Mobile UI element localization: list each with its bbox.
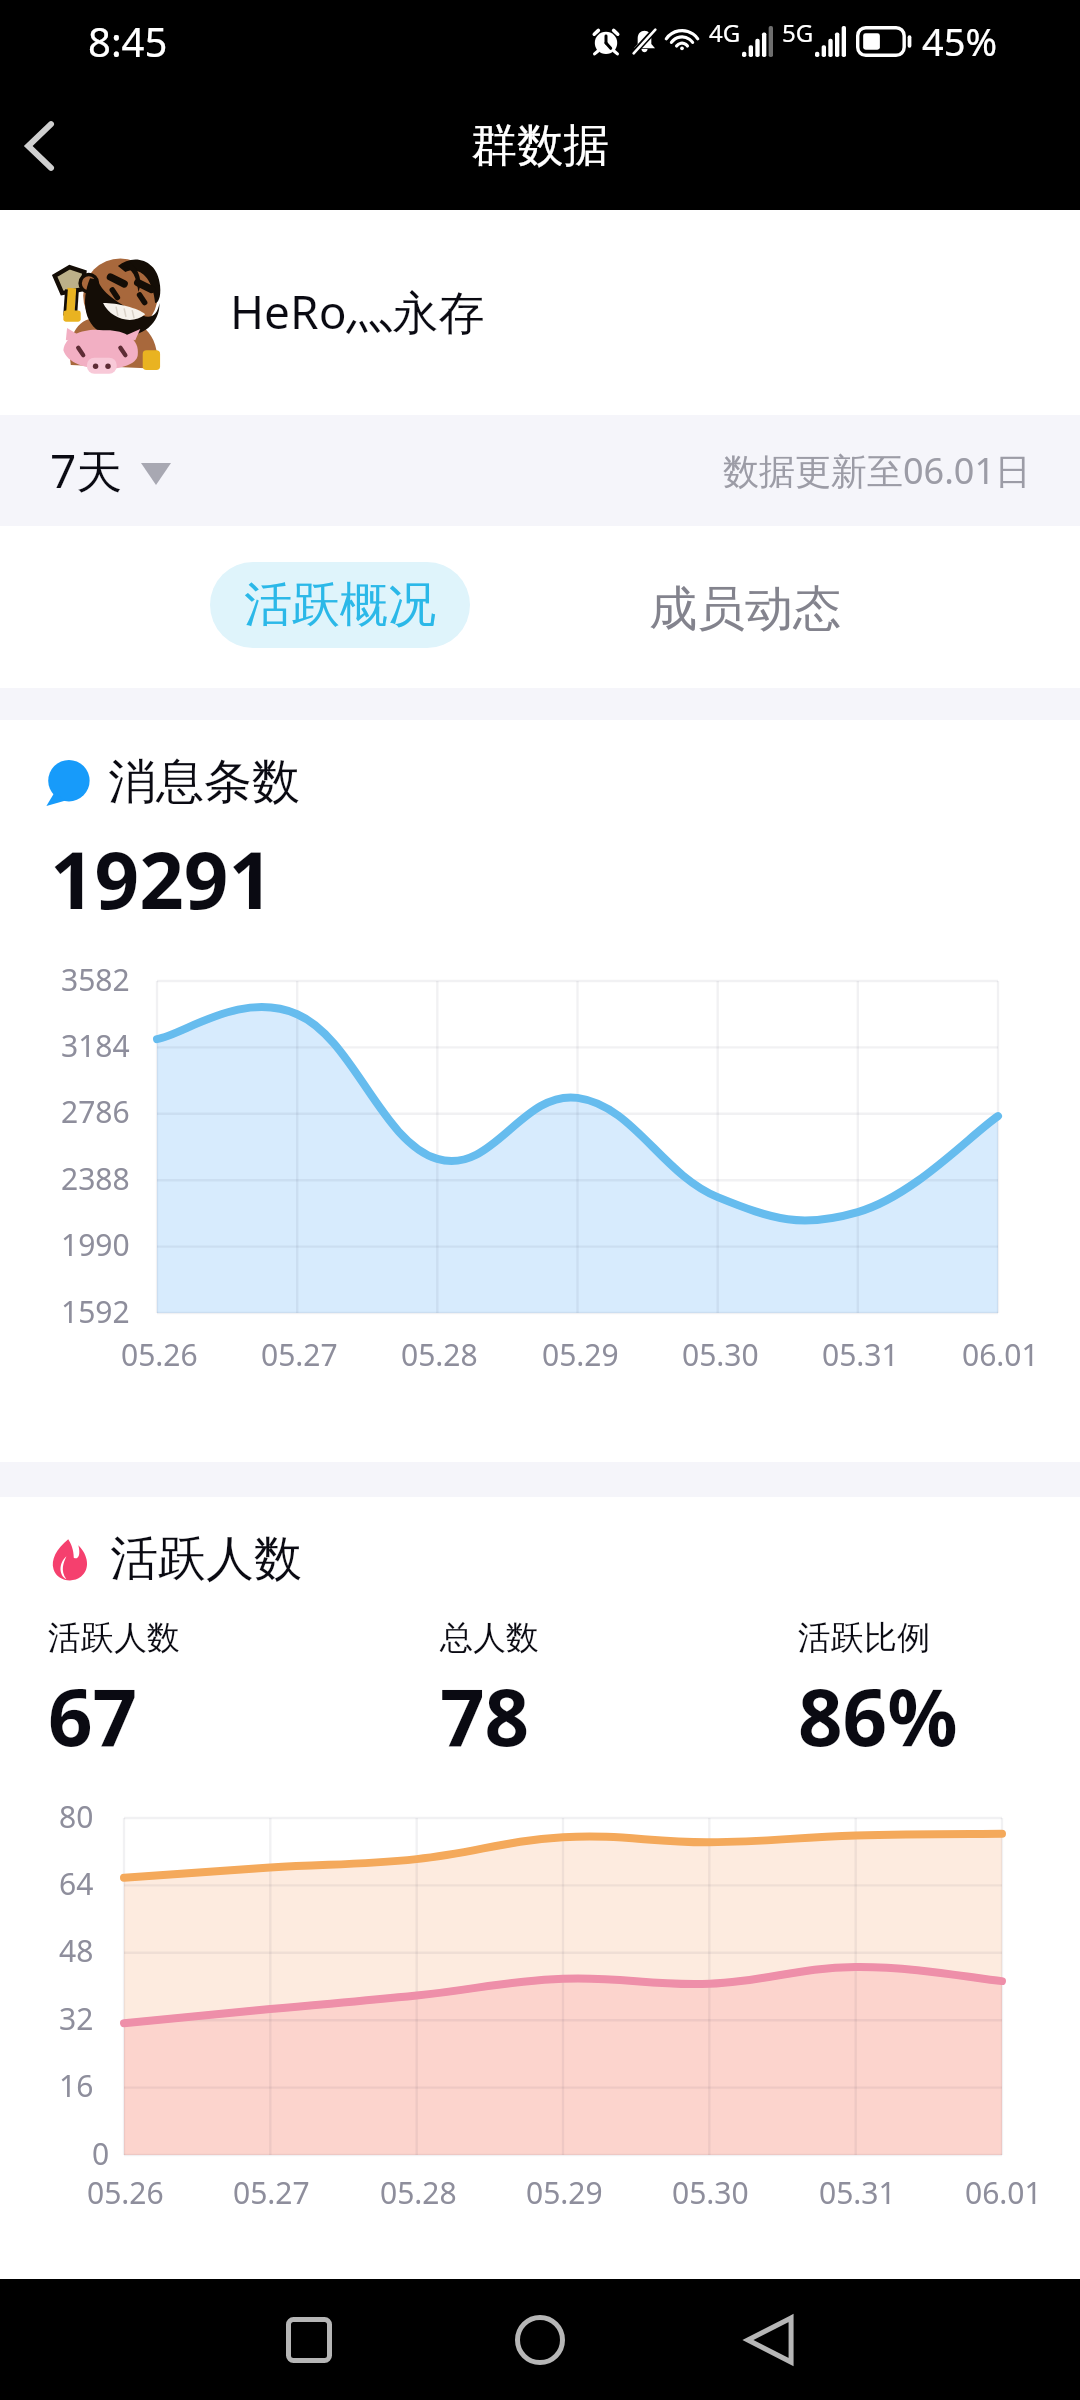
staticText: 80 <box>59 1796 94 1837</box>
staticText: 0 <box>92 2133 110 2174</box>
button[interactable]: Back <box>0 107 78 185</box>
staticText: 活跃人数 <box>48 1617 180 1659</box>
staticText: 05.31 <box>822 1334 899 1375</box>
staticText: 成员动态 <box>649 579 841 639</box>
staticText: 2388 <box>61 1158 130 1199</box>
staticText: 3184 <box>61 1025 130 1066</box>
staticText: 05.29 <box>542 1334 619 1375</box>
staticText: 32 <box>59 1998 94 2039</box>
staticText: 05.29 <box>526 2172 603 2213</box>
staticText: HeRo灬永存 <box>230 280 485 343</box>
staticText: 活跃人数 <box>110 1529 302 1589</box>
button[interactable]: 成员动态 <box>625 562 865 656</box>
button[interactable]: Home <box>480 2279 600 2400</box>
staticText: 48 <box>59 1930 94 1971</box>
staticText: 4G <box>709 16 741 49</box>
staticText: 86% <box>798 1663 958 1769</box>
staticText: 活跃比例 <box>798 1617 930 1659</box>
button[interactable]: 7天 <box>36 429 185 512</box>
staticText: 1990 <box>61 1224 130 1265</box>
staticText: 05.26 <box>87 2172 164 2213</box>
button[interactable]: HeRo灬永存 <box>0 210 1080 415</box>
staticText: 19291 <box>50 826 274 932</box>
button[interactable]: Back <box>709 2279 829 2400</box>
staticText: 67 <box>48 1663 138 1769</box>
staticText: 消息条数 <box>108 752 300 812</box>
staticText: 1592 <box>61 1291 130 1332</box>
staticText: 总人数 <box>440 1617 539 1659</box>
staticText: 05.31 <box>819 2172 896 2213</box>
staticText: 7天 <box>50 439 123 502</box>
staticText: 06.01 <box>965 2172 1042 2213</box>
staticText: 活跃概况 <box>244 575 436 635</box>
staticText: 16 <box>59 2065 94 2106</box>
staticText: 8:45 <box>88 14 168 68</box>
button[interactable]: Recents <box>249 2279 369 2400</box>
staticText: 05.26 <box>121 1334 198 1375</box>
staticText: 05.30 <box>682 1334 759 1375</box>
staticText: 3582 <box>61 959 130 1000</box>
staticText: 数据更新至06.01日 <box>723 446 1032 495</box>
staticText: 5G <box>782 16 814 49</box>
staticText: 64 <box>59 1863 94 1904</box>
staticText: 05.30 <box>672 2172 749 2213</box>
staticText: 78 <box>440 1663 530 1769</box>
staticText: 05.27 <box>261 1334 338 1375</box>
staticText: 45% <box>922 15 998 67</box>
staticText: 2786 <box>61 1091 130 1132</box>
button[interactable]: 活跃概况 <box>210 562 470 648</box>
staticText: 05.28 <box>380 2172 457 2213</box>
staticText: 05.27 <box>233 2172 310 2213</box>
staticText: 06.01 <box>962 1334 1039 1375</box>
staticText: 群数据 <box>471 117 609 175</box>
staticText: 05.28 <box>401 1334 478 1375</box>
